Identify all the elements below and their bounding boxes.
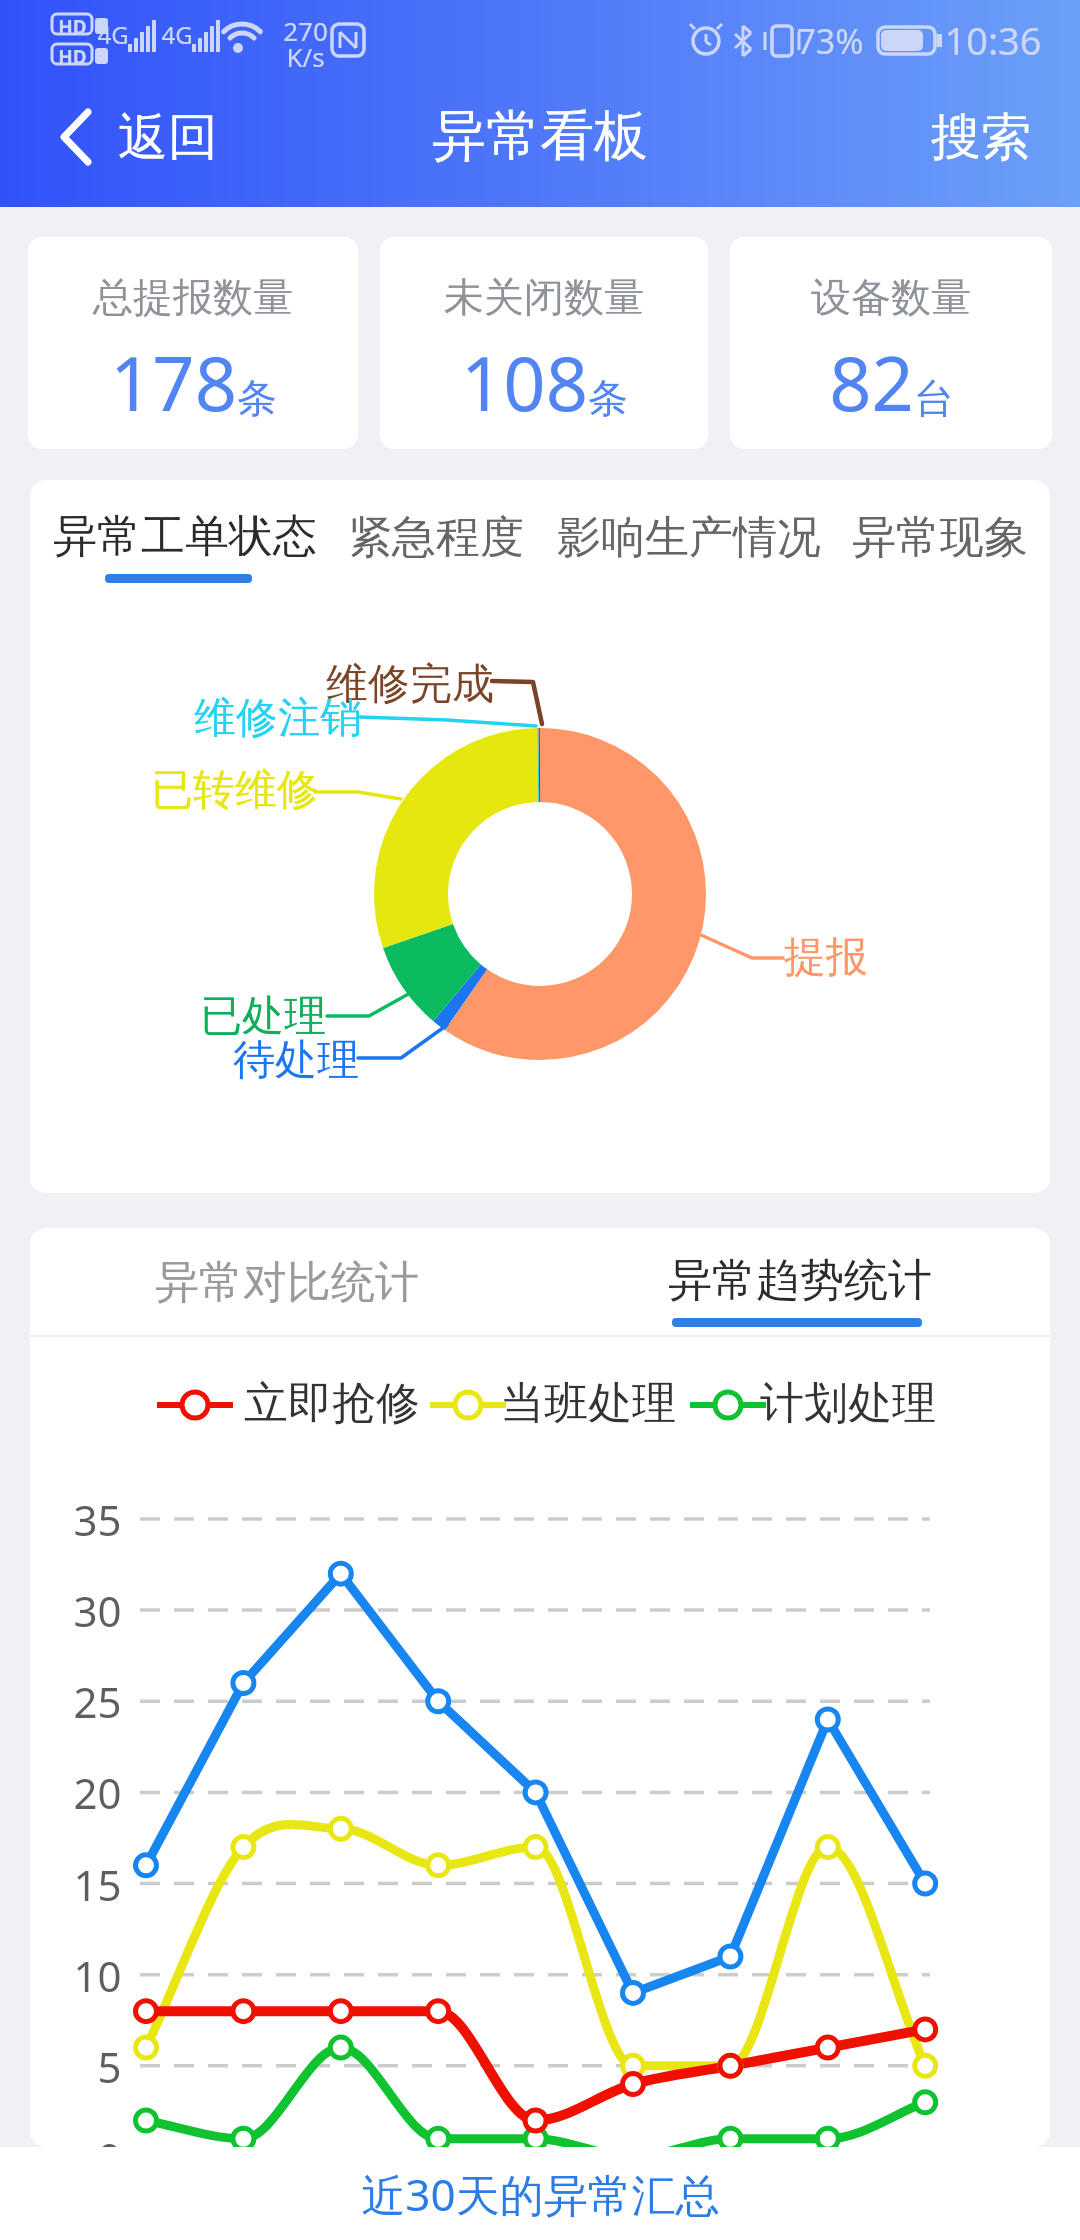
staticText: 73% [796,18,864,64]
staticText: 异常趋势统计 [668,1253,932,1308]
button[interactable]: 设备数量 [730,237,1052,449]
staticText: 4G [161,18,193,51]
staticText: 异常对比统计 [155,1255,419,1310]
staticText: 返回 [118,106,218,169]
button[interactable]: 紧急程度 [338,500,534,574]
staticText: 台 [914,373,954,423]
staticText: 异常工单状态 [53,509,317,564]
staticText: 已转维修 [151,764,319,817]
staticText: 维修注销 [194,692,362,745]
staticText: 搜索 [931,106,1031,169]
button[interactable]: 异常现象 [842,500,1038,574]
staticText: 108 [461,332,588,433]
button[interactable]: 异常对比统计 [145,1245,429,1319]
staticText: 已处理 [200,990,326,1043]
staticText: 总提报数量 [93,272,293,322]
button[interactable]: 异常工单状态 [43,499,327,573]
staticText: 维修完成 [326,658,494,711]
staticText: 未关闭数量 [444,272,644,322]
staticText: 82 [829,332,914,433]
button[interactable]: 影响生产情况 [547,500,831,574]
staticText: 条 [588,373,628,423]
staticText: 当班处理 [500,1376,676,1431]
staticText: 待处理 [233,1034,359,1087]
staticText: 条 [237,373,277,423]
staticText: 异常看板 [432,102,648,170]
staticText: 270 [283,13,328,48]
staticText: 35 [73,1491,122,1548]
staticText: 20 [73,1764,122,1821]
staticText: 4G [97,18,129,51]
staticText: 178 [110,332,237,433]
staticText: 计划处理 [760,1376,936,1431]
staticText: 10 [73,1947,122,2004]
button[interactable]: 总提报数量 [28,237,358,449]
staticText: 10:36 [944,14,1042,66]
staticText: HD [58,14,87,34]
staticText: 设备数量 [811,272,971,322]
staticText: 异常现象 [852,510,1028,565]
staticText: 15 [73,1856,122,1913]
staticText: 紧急程度 [348,510,524,565]
staticText: 立即抢修 [244,1376,420,1431]
staticText: 0 [97,2129,122,2147]
staticText: 近30天的异常汇总 [361,2164,720,2224]
button[interactable]: 未关闭数量 [380,237,708,449]
button[interactable]: 异常趋势统计 [658,1243,942,1317]
button[interactable]: 搜索 [921,97,1041,177]
button[interactable]: 返回 [30,95,218,180]
staticText: K/s [286,39,325,74]
staticText: 提报 [784,931,868,984]
staticText: 5 [97,2038,122,2095]
staticText: 25 [73,1673,122,1730]
staticText: HD [58,44,87,64]
staticText: 影响生产情况 [557,510,821,565]
staticText: 30 [73,1582,122,1639]
